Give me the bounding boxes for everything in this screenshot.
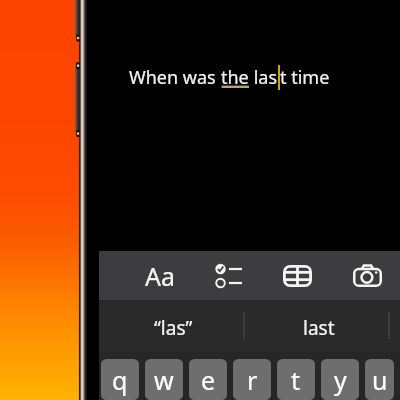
button[interactable]: r <box>233 359 271 400</box>
button[interactable]: Table <box>263 251 332 300</box>
staticText: last <box>303 315 335 341</box>
button[interactable]: last <box>246 300 391 352</box>
button[interactable]: e <box>189 359 227 400</box>
button[interactable]: “las” <box>101 300 246 352</box>
staticText: “las” <box>154 315 193 341</box>
staticText: When was <box>129 65 221 90</box>
button[interactable]: Aa <box>126 251 195 300</box>
staticText: u <box>372 363 388 397</box>
button[interactable]: y <box>321 359 359 400</box>
button[interactable]: q <box>101 359 139 400</box>
button[interactable]: Checklist <box>194 251 263 300</box>
button[interactable]: w <box>145 359 183 400</box>
staticText: e <box>201 363 216 397</box>
staticText: w <box>154 363 174 397</box>
button[interactable]: Insert photo <box>333 251 400 300</box>
button[interactable]: t <box>277 359 315 400</box>
staticText: t <box>291 363 301 397</box>
staticText: y <box>334 363 347 397</box>
staticText: r <box>247 363 258 397</box>
staticText: las <box>249 65 278 90</box>
staticText: t time <box>280 65 330 90</box>
staticText: q <box>112 363 128 397</box>
button[interactable]: u <box>365 359 394 400</box>
staticText: Aa <box>145 259 176 293</box>
staticText: the <box>221 65 249 90</box>
